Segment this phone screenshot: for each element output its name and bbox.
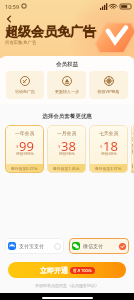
button[interactable]: 立即开通 — [8, 262, 126, 278]
button[interactable]: 更新快人一步 — [47, 71, 86, 99]
staticText: 一天会员 — [131, 130, 134, 154]
staticText: 微信支付 — [83, 243, 103, 249]
staticText: 99 — [19, 137, 34, 152]
staticText: 每日低至0.27元 — [11, 166, 38, 171]
staticText: 选择会员套餐更优惠 — [0, 113, 134, 120]
staticText: 38 — [61, 137, 76, 152]
staticText: 超级会员免广告 — [5, 23, 96, 39]
staticText: 七天会员 — [99, 130, 119, 136]
staticText: 18 — [103, 137, 118, 152]
button[interactable]: Back — [3, 13, 15, 25]
button[interactable]: 支付宝支付 — [5, 238, 64, 254]
button[interactable]: 一月会员 — [47, 125, 86, 173]
staticText: 校园VIP视角 — [97, 89, 120, 94]
staticText: 原价58元 — [59, 151, 75, 156]
staticText: 每日低至1.26元 — [53, 166, 80, 171]
staticText: 原价9元 — [131, 169, 134, 173]
staticText: 10:59 — [5, 3, 20, 10]
staticText: 支付宝支付 — [19, 243, 44, 249]
staticText: 立即开通 — [40, 266, 68, 275]
staticText: 更新快人一步 — [55, 89, 79, 94]
button[interactable]: 启动免广告 — [6, 71, 44, 99]
staticText: 会员权益 — [56, 61, 78, 68]
staticText: 每日低至2.57元 — [95, 166, 122, 171]
staticText: 原价28元 — [101, 151, 117, 156]
staticText: ¥ — [131, 162, 134, 167]
button[interactable]: 一年会员 — [5, 125, 44, 173]
staticText: 原价399元 — [16, 151, 34, 156]
staticText: ¥ — [58, 144, 61, 149]
button[interactable]: 校园VIP视角 — [89, 71, 128, 99]
staticText: 开通即表示您同意《会员服务协议》 — [0, 283, 134, 288]
staticText: 启动免广告 — [15, 89, 35, 94]
staticText: ¥ — [16, 144, 19, 149]
button[interactable]: 一天会员 — [131, 125, 134, 173]
staticText: 一年会员 — [15, 130, 35, 136]
staticText: 首月100元 — [73, 268, 92, 273]
staticText: 一月会员 — [57, 130, 77, 136]
staticText: 所有剧集免广告 — [5, 40, 37, 46]
staticText: 每日低至6元 — [131, 164, 134, 173]
button[interactable]: 微信支付 — [69, 238, 129, 254]
staticText: ¥ — [100, 144, 103, 149]
button[interactable]: 七天会员 — [89, 125, 128, 173]
